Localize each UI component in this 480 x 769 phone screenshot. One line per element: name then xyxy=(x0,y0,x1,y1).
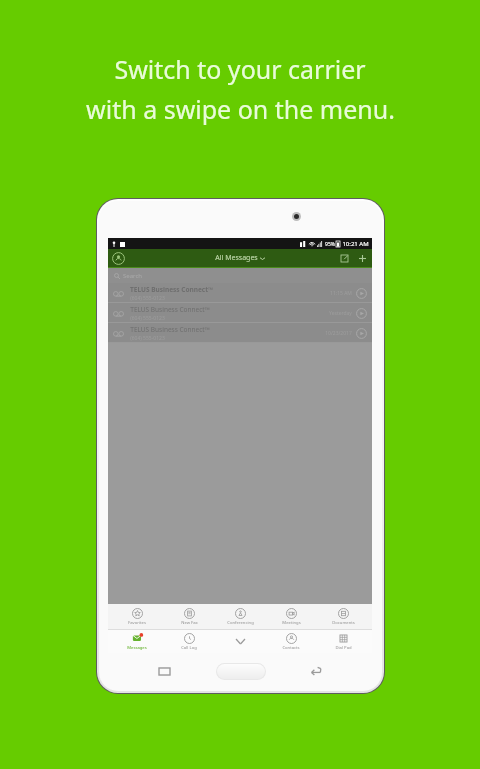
staticText: Contacts xyxy=(282,645,300,651)
staticText: TELUS Business Connect™ xyxy=(130,325,210,334)
button[interactable]: Documents xyxy=(321,604,365,629)
staticText: (604) 555-0123 xyxy=(130,335,165,342)
staticText: with a swipe on the menu. xyxy=(86,92,395,126)
button[interactable]: Play voicemail xyxy=(356,288,367,299)
button[interactable]: Conferencing xyxy=(218,604,262,629)
button[interactable]: New Fax xyxy=(167,604,211,629)
staticText: 11:15 AM xyxy=(330,290,352,297)
button[interactable]: Favorites xyxy=(115,604,159,629)
button[interactable]: Meetings xyxy=(269,604,313,629)
button[interactable]: TELUS Business Connect™ xyxy=(108,283,372,303)
staticText: New Fax xyxy=(181,620,198,626)
staticText: Messages xyxy=(127,645,147,651)
staticText: (604) 555-0123 xyxy=(130,295,165,302)
button[interactable]: Back xyxy=(307,661,327,681)
button[interactable]: Home xyxy=(216,663,266,680)
button[interactable]: Compose message xyxy=(338,252,351,265)
staticText: Yesterday xyxy=(329,310,352,317)
staticText: (604) 555-0123 xyxy=(130,315,165,322)
staticText: Favorites xyxy=(128,620,146,626)
staticText: Conferencing xyxy=(227,620,254,626)
staticText: 10/23/2017 xyxy=(325,330,352,337)
button[interactable]: Open navigation menu xyxy=(112,252,125,265)
staticText: Documents xyxy=(332,620,355,626)
button[interactable]: Recent apps xyxy=(154,661,174,681)
button[interactable]: Call Log xyxy=(167,630,211,653)
staticText: Search xyxy=(123,272,142,280)
staticText: Call Log xyxy=(181,645,197,651)
button[interactable]: Collapse menu xyxy=(218,630,262,653)
staticText: TELUS Business Connect™ xyxy=(130,305,210,314)
button[interactable]: TELUS Business Connect™ xyxy=(108,323,372,343)
staticText: All Messages xyxy=(215,253,258,263)
button[interactable]: Play voicemail xyxy=(356,308,367,319)
staticText: Dial Pad xyxy=(335,645,352,651)
staticText: TELUS Business Connect™ xyxy=(130,285,213,294)
staticText: Switch to your carrier xyxy=(114,52,366,86)
button[interactable]: Dial Pad xyxy=(321,630,365,653)
staticText: Meetings xyxy=(282,620,301,626)
button[interactable]: Messages xyxy=(115,630,159,653)
button[interactable]: Contacts xyxy=(269,630,313,653)
staticText: 95% xyxy=(325,241,335,248)
button[interactable]: Play voicemail xyxy=(356,328,367,339)
staticText: 10:21 AM xyxy=(342,240,369,248)
button[interactable]: Add xyxy=(356,252,369,265)
button[interactable]: TELUS Business Connect™ xyxy=(108,303,372,323)
button[interactable]: All Messages xyxy=(215,253,265,263)
